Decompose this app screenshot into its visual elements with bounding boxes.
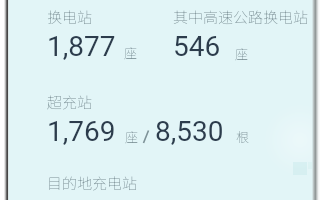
staticText: 根 [236, 127, 250, 146]
button[interactable]: 换电站 [47, 0, 173, 85]
staticText: 座 [124, 43, 138, 62]
button[interactable]: 超充站 [47, 85, 313, 161]
staticText: 546 [173, 30, 221, 63]
staticText: 座 [125, 127, 139, 146]
staticText: 1,877 [47, 30, 116, 63]
staticText: 8,530 [155, 115, 224, 148]
staticText: 其中高速公路换电站 [173, 6, 309, 28]
other: of [142, 129, 152, 145]
staticText: 1,769 [47, 115, 116, 148]
staticText: 目的地充电站 [47, 172, 138, 194]
staticText: 换电站 [47, 6, 93, 28]
button[interactable]: 换电站 [8, 0, 313, 200]
staticText: 超充站 [47, 91, 93, 113]
staticText: 座 [235, 44, 249, 63]
button[interactable]: 目的地充电站 [47, 161, 313, 200]
button[interactable]: 其中高速公路换电站 [173, 0, 313, 85]
